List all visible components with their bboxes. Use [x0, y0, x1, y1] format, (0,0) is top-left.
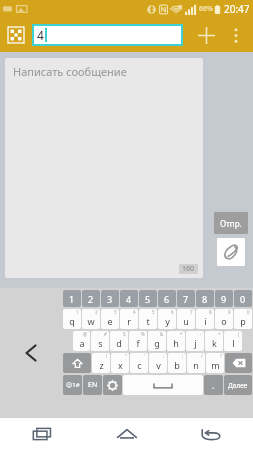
button[interactable]: Contacts: [6, 25, 26, 45]
button[interactable]: +: [205, 331, 223, 351]
staticText: *: [180, 331, 183, 337]
staticText: d: [116, 337, 122, 349]
button[interactable]: Period: [204, 375, 223, 395]
button[interactable]: :: [149, 353, 167, 373]
staticText: 8: [209, 309, 212, 315]
button[interactable]: Home: [85, 418, 169, 450]
staticText: ?: [220, 353, 222, 359]
button[interactable]: 8: [196, 309, 214, 329]
staticText: o: [221, 315, 227, 327]
staticText: +: [218, 331, 221, 337]
button[interactable]: ;: [168, 353, 186, 373]
button[interactable]: #: [91, 331, 109, 351]
button[interactable]: 3: [101, 309, 119, 329]
staticText: ': [144, 353, 146, 359]
button[interactable]: Attach: [217, 238, 245, 266]
button[interactable]: 1: [63, 309, 81, 329]
staticText: 0: [247, 309, 250, 315]
button[interactable]: ': [130, 353, 148, 373]
button[interactable]: 2: [82, 290, 100, 307]
button[interactable]: 9: [215, 309, 233, 329]
staticText: 5: [145, 293, 151, 305]
button[interactable]: 1: [63, 290, 81, 307]
staticText: !: [106, 353, 108, 359]
staticText: 3: [107, 293, 113, 305]
staticText: b: [174, 359, 180, 371]
button[interactable]: 4: [32, 24, 183, 46]
staticText: ;: [182, 353, 184, 359]
staticText: &: [160, 331, 164, 337]
staticText: r: [127, 315, 131, 327]
staticText: ☺1#: [66, 381, 80, 389]
staticText: ": [125, 353, 127, 359]
staticText: 0: [240, 293, 246, 305]
button[interactable]: Backspace: [225, 353, 252, 373]
staticText: :: [163, 353, 165, 359]
staticText: n: [193, 359, 199, 371]
button[interactable]: Space: [123, 375, 203, 395]
staticText: e: [107, 315, 113, 327]
staticText: p: [240, 315, 246, 327]
staticText: EN: [88, 380, 98, 390]
button[interactable]: 7: [177, 290, 195, 307]
button[interactable]: Symbols: [63, 375, 82, 395]
staticText: -: [200, 331, 202, 337]
button[interactable]: ?: [206, 353, 224, 373]
button[interactable]: *: [167, 331, 185, 351]
button[interactable]: 6: [158, 290, 176, 307]
staticText: 5: [152, 309, 155, 315]
button[interactable]: Next: [224, 375, 252, 395]
button[interactable]: Shift: [63, 353, 91, 373]
staticText: u: [183, 315, 189, 327]
button[interactable]: /: [187, 353, 205, 373]
staticText: Отпр.: [220, 218, 242, 229]
button[interactable]: 3: [101, 290, 119, 307]
button[interactable]: @: [73, 331, 90, 351]
button[interactable]: 6: [158, 309, 176, 329]
button[interactable]: 8: [196, 290, 214, 307]
button[interactable]: ": [111, 353, 129, 373]
button[interactable]: $: [110, 331, 128, 351]
staticText: .: [212, 379, 215, 391]
button[interactable]: %: [129, 331, 147, 351]
button[interactable]: Collapse keyboard: [0, 288, 62, 418]
staticText: 20:47: [224, 2, 250, 16]
button[interactable]: 0: [234, 309, 252, 329]
button[interactable]: Settings: [103, 375, 122, 395]
staticText: 6: [164, 293, 170, 305]
button[interactable]: Add recipient: [193, 22, 219, 48]
button[interactable]: !: [92, 353, 110, 373]
button[interactable]: 2: [82, 309, 100, 329]
button[interactable]: Language: [83, 375, 102, 395]
button[interactable]: 9: [215, 290, 233, 307]
button[interactable]: &: [148, 331, 166, 351]
staticText: 160: [182, 264, 195, 274]
staticText: (: [238, 331, 240, 337]
button[interactable]: Recents: [0, 418, 85, 450]
button[interactable]: 0: [234, 290, 252, 307]
button[interactable]: 4: [120, 290, 138, 307]
button[interactable]: 4: [120, 309, 138, 329]
staticText: s: [98, 337, 103, 349]
staticText: t: [146, 315, 150, 327]
button[interactable]: Отпр.: [214, 212, 248, 234]
button[interactable]: 5: [139, 290, 157, 307]
staticText: 1: [76, 309, 79, 315]
staticText: 4: [133, 309, 136, 315]
button[interactable]: 5: [139, 309, 157, 329]
staticText: j: [194, 337, 197, 349]
staticText: 66%: [199, 4, 213, 14]
button[interactable]: (: [224, 331, 242, 351]
button[interactable]: -: [186, 331, 204, 351]
button[interactable]: Back: [169, 418, 253, 450]
staticText: #: [104, 331, 107, 337]
button[interactable]: Написать сообщение: [5, 58, 203, 278]
staticText: 6: [171, 309, 174, 315]
button[interactable]: 7: [177, 309, 195, 329]
staticText: /: [201, 353, 203, 359]
staticText: %: [141, 331, 145, 337]
staticText: 7: [183, 293, 189, 305]
button[interactable]: More options: [225, 24, 247, 46]
staticText: x: [118, 359, 123, 371]
staticText: Далее: [228, 381, 248, 390]
